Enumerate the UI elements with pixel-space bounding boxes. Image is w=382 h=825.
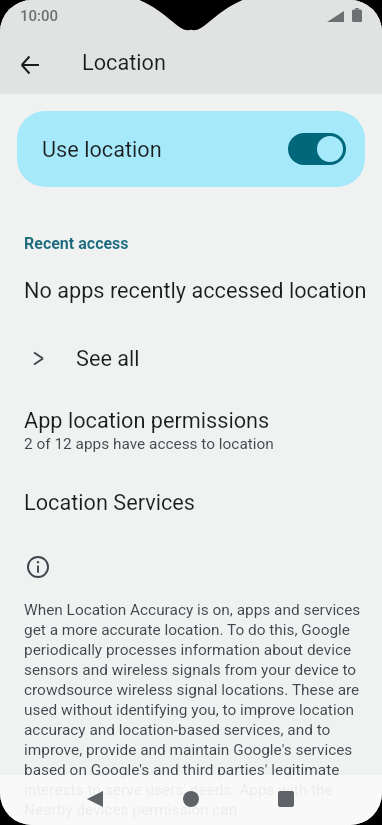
button[interactable]: See all: [0, 334, 382, 382]
staticText: No apps recently accessed location: [24, 278, 367, 303]
staticText: Location: [82, 50, 166, 75]
button[interactable]: Use location toggle: [288, 133, 346, 165]
staticText: App location permissions: [24, 408, 270, 433]
button[interactable]: Home: [175, 783, 207, 815]
button[interactable]: App location permissions: [0, 408, 382, 453]
button[interactable]: Use location: [17, 111, 365, 187]
staticText: 2 of 12 apps have access to location: [24, 435, 274, 453]
staticText: Recent access: [24, 234, 129, 253]
button[interactable]: Recent apps: [270, 783, 302, 815]
button[interactable]: Back: [79, 783, 111, 815]
button[interactable]: Location Services: [24, 490, 196, 515]
staticText: Use location: [42, 137, 162, 162]
staticText: When Location Accuracy is on, apps and s…: [24, 601, 364, 818]
staticText: See all: [76, 346, 140, 371]
staticText: 10:00: [20, 7, 59, 25]
button[interactable]: Back: [9, 44, 50, 85]
